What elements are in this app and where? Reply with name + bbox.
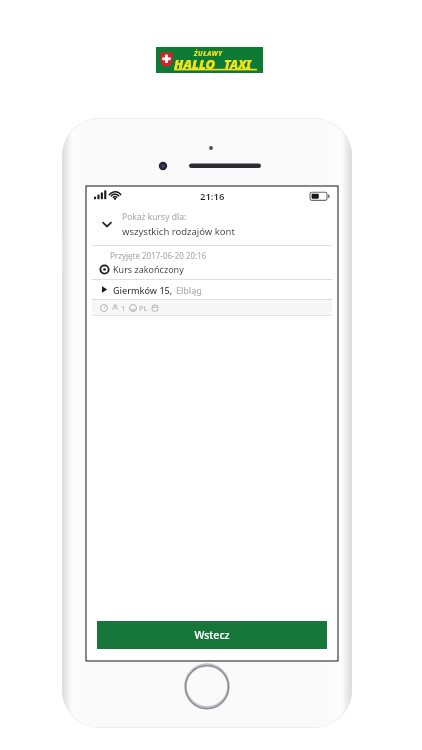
staticText: wszystkich rodzajów kont (122, 225, 235, 238)
staticText: Giermków 15, (113, 284, 173, 296)
staticText: Przyjęte 2017-06-20 20:16 (110, 250, 207, 261)
staticText: PL (139, 303, 148, 313)
button[interactable]: Przyjęte 2017-06-20 20:16 (92, 245, 332, 316)
staticText: HALLO (174, 55, 216, 73)
button[interactable]: Pokaż kursy dla: (86, 206, 338, 242)
staticText: Kurs zakończony (113, 263, 184, 275)
staticText: Wstecz (194, 628, 230, 642)
staticText: Elbląg (176, 284, 202, 296)
staticText: ŻUŁAWY (194, 49, 223, 58)
staticText: TAXI (224, 56, 252, 72)
staticText: 21:16 (200, 190, 225, 203)
staticText: 1 (121, 303, 126, 313)
staticText: Pokaż kursy dla: (122, 211, 187, 223)
button[interactable]: Wstecz (97, 621, 327, 649)
